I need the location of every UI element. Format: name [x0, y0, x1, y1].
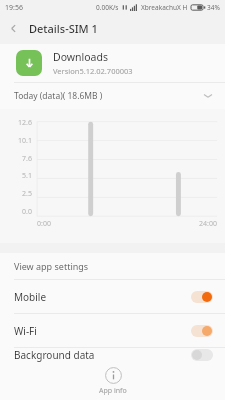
staticText: 10.1	[18, 136, 32, 146]
staticText: 12.6	[18, 118, 32, 128]
staticText: 0.00K/s	[96, 3, 119, 12]
staticText: Background data	[14, 348, 95, 362]
button[interactable]: Today (data)( 18.6MB )	[0, 83, 225, 109]
button[interactable]: Wi-Fi	[0, 314, 225, 347]
staticText: Details-SIM 1	[29, 21, 98, 36]
staticText: Mobile	[14, 290, 47, 304]
staticText: 2.5	[22, 189, 32, 199]
staticText: 34%	[207, 3, 220, 12]
staticText: Downloads	[53, 50, 108, 64]
button[interactable]: View app settings	[0, 253, 225, 279]
staticText: 0.0	[22, 207, 32, 217]
staticText: Today (data)( 18.6MB )	[14, 90, 103, 102]
staticText: View app settings	[14, 260, 89, 272]
staticText: 24:00	[199, 219, 217, 229]
staticText: XbreakachuX H	[141, 3, 188, 12]
button[interactable]: App info	[89, 365, 137, 398]
staticText: Version5.12.02.700003	[53, 66, 133, 76]
staticText: 0:00	[37, 219, 51, 229]
staticText: App info	[99, 386, 127, 396]
staticText: 7.6	[22, 154, 32, 164]
button[interactable]: Background data	[0, 348, 225, 362]
staticText: 5.1	[22, 171, 32, 181]
staticText: 19:56	[5, 3, 23, 13]
button[interactable]: Downloads	[0, 44, 225, 82]
button[interactable]: Mobile	[0, 280, 225, 313]
button[interactable]: Back	[0, 15, 27, 42]
staticText: Wi-Fi	[14, 324, 37, 338]
